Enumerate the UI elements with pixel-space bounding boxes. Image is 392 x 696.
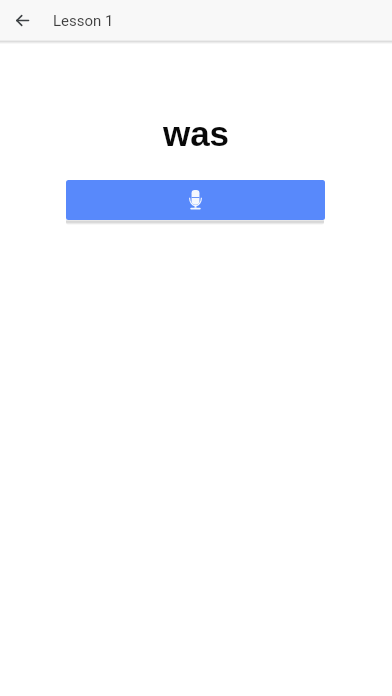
- staticText: was: [0, 114, 392, 153]
- staticText: Lesson 1: [53, 12, 114, 30]
- button[interactable]: Back: [0, 0, 44, 40]
- button[interactable]: Record pronunciation: [66, 180, 325, 220]
